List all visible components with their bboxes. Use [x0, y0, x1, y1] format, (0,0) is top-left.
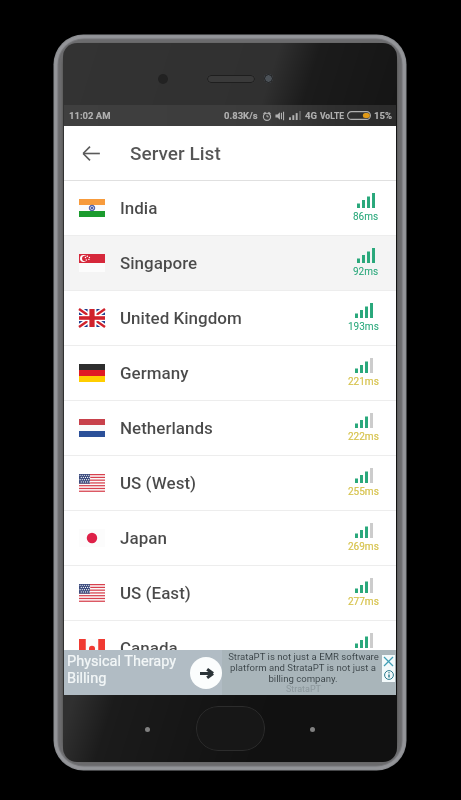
staticText: 4G — [305, 110, 317, 121]
staticText: 86ms — [353, 211, 379, 223]
button[interactable]: United Kingdom — [64, 291, 396, 345]
staticText: 15% — [374, 110, 392, 121]
staticText: 221ms — [348, 376, 379, 388]
staticText: 0.83K/s — [224, 110, 258, 121]
button[interactable]: Canada — [64, 621, 396, 675]
staticText: 193ms — [348, 321, 379, 333]
staticText: Japan — [120, 528, 167, 548]
staticText: platform and StrataPT is not just a — [230, 662, 376, 673]
staticText: United Kingdom — [120, 308, 242, 328]
staticText: 290ms — [348, 651, 379, 663]
button[interactable]: Open ad — [190, 657, 222, 689]
staticText: Germany — [120, 363, 189, 383]
staticText: Physical Therapy — [67, 653, 177, 670]
button[interactable]: US (East) — [64, 566, 396, 620]
staticText: Server List — [130, 142, 221, 164]
staticText: US (West) — [120, 473, 197, 493]
staticText: 92ms — [353, 266, 379, 278]
button[interactable]: US (West) — [64, 456, 396, 510]
staticText: billing company. — [268, 673, 338, 684]
staticText: Billing — [67, 670, 107, 687]
staticText: 277ms — [348, 596, 379, 608]
staticText: 222ms — [348, 431, 379, 443]
staticText: StrataPT — [286, 684, 321, 695]
button[interactable]: Physical Therapy — [64, 650, 396, 695]
button[interactable]: Netherlands — [64, 401, 396, 455]
button[interactable]: Back — [74, 136, 108, 170]
button[interactable]: Ad info — [382, 668, 395, 681]
button[interactable]: Singapore — [64, 236, 396, 290]
button[interactable]: Japan — [64, 511, 396, 565]
button[interactable]: Close ad — [382, 655, 395, 668]
staticText: 269ms — [348, 541, 379, 553]
button[interactable]: India — [64, 181, 396, 235]
staticText: Canada — [120, 638, 178, 658]
staticText: 255ms — [348, 486, 379, 498]
staticText: India — [120, 198, 158, 218]
staticText: US (East) — [120, 583, 191, 603]
button[interactable]: Germany — [64, 346, 396, 400]
staticText: StrataPT is not just a EMR software — [228, 651, 379, 662]
staticText: VoLTE — [320, 111, 344, 121]
staticText: Singapore — [120, 253, 198, 273]
staticText: Netherlands — [120, 418, 213, 438]
staticText: 11:02 AM — [69, 110, 111, 121]
